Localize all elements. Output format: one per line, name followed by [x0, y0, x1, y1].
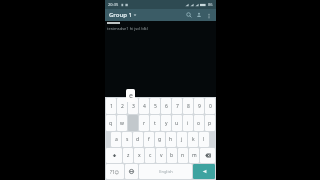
button[interactable]: j: [177, 132, 187, 147]
staticText: 3: [132, 103, 135, 110]
button[interactable]: s: [122, 132, 132, 147]
button[interactable]: 0: [205, 98, 215, 114]
staticText: s: [126, 136, 129, 143]
button[interactable]: o: [194, 115, 204, 131]
staticText: 9: [198, 103, 201, 110]
button[interactable]: Send: [193, 164, 215, 179]
staticText: u: [175, 120, 179, 127]
button[interactable]: Backspace: [200, 148, 215, 163]
staticText: e: [129, 91, 133, 101]
staticText: f: [148, 136, 150, 143]
button[interactable]: h: [166, 132, 176, 147]
button[interactable]: r: [139, 115, 149, 131]
staticText: w: [120, 120, 124, 127]
staticText: g: [158, 136, 162, 143]
staticText: c: [149, 152, 152, 159]
button[interactable]: b: [167, 148, 177, 163]
staticText: y: [165, 120, 168, 127]
staticText: z: [127, 152, 130, 159]
staticText: x: [138, 152, 141, 159]
button[interactable]: q: [106, 115, 116, 131]
button[interactable]: g: [155, 132, 165, 147]
button[interactable]: 9: [194, 98, 204, 114]
button[interactable]: 6: [161, 98, 171, 114]
staticText: l: [203, 136, 205, 143]
staticText: b: [170, 152, 174, 159]
staticText: English: [159, 169, 173, 174]
button[interactable]: 4: [139, 98, 149, 114]
staticText: 1: [110, 103, 113, 110]
staticText: j: [181, 136, 183, 143]
button[interactable]: a: [111, 132, 121, 147]
button[interactable]: Search: [184, 10, 194, 20]
button[interactable]: u: [172, 115, 182, 131]
button[interactable]: i: [183, 115, 193, 131]
button[interactable]: 5: [150, 98, 160, 114]
staticText: h: [169, 136, 173, 143]
staticText: 8: [187, 103, 190, 110]
staticText: m: [192, 152, 197, 159]
staticText: o: [197, 120, 201, 127]
staticText: 2: [121, 103, 124, 110]
button[interactable]: z: [123, 148, 133, 163]
staticText: 6: [165, 103, 168, 110]
button[interactable]: 8: [183, 98, 193, 114]
button[interactable]: k: [188, 132, 198, 147]
staticText: 7: [176, 103, 179, 110]
button[interactable]: m: [189, 148, 199, 163]
staticText: 0: [209, 103, 212, 110]
button[interactable]: n: [178, 148, 188, 163]
button[interactable]: ?1☺: [106, 164, 124, 179]
button[interactable]: Change keyboard: [125, 164, 138, 179]
button[interactable]: y: [161, 115, 171, 131]
staticText: k: [192, 136, 195, 143]
button[interactable]: d: [133, 132, 143, 147]
button[interactable]: Shift: [106, 148, 122, 163]
staticText: p: [208, 120, 212, 127]
button[interactable]: p: [205, 115, 215, 131]
button[interactable]: l: [199, 132, 209, 147]
button[interactable]: f: [144, 132, 154, 147]
staticText: ?1☺: [110, 169, 120, 175]
button[interactable]: v: [156, 148, 166, 163]
button[interactable]: 7: [172, 98, 182, 114]
staticText: t: [154, 120, 156, 127]
button[interactable]: 2: [117, 98, 127, 114]
staticText: Group 1: [109, 11, 132, 19]
button[interactable]: More options: [204, 11, 213, 20]
staticText: i: [187, 120, 189, 127]
button[interactable]: 1: [106, 98, 116, 114]
staticText: 5: [154, 103, 157, 110]
staticText: n: [181, 152, 185, 159]
staticText: testmsdse1 hi jsd /dkl: [107, 26, 148, 31]
button[interactable]: Group 1: [108, 10, 138, 20]
staticText: q: [109, 120, 113, 127]
staticText: d: [136, 136, 140, 143]
staticText: 20:35: [108, 2, 119, 7]
button[interactable]: w: [117, 115, 127, 131]
staticText: v: [160, 152, 163, 159]
button[interactable]: t: [150, 115, 160, 131]
button[interactable]: English: [139, 164, 192, 179]
button[interactable]: Members: [194, 10, 204, 20]
button[interactable]: 3: [128, 98, 138, 114]
staticText: 86: [208, 2, 213, 7]
staticText: 4: [143, 103, 146, 110]
button[interactable]: c: [145, 148, 155, 163]
staticText: a: [115, 136, 118, 143]
staticText: r: [143, 120, 146, 127]
button[interactable]: x: [134, 148, 144, 163]
